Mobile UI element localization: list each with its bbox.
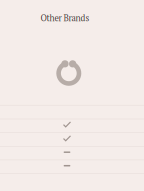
- button[interactable]: Other Brands: [40, 12, 89, 24]
- staticText: Other Brands: [40, 12, 89, 24]
